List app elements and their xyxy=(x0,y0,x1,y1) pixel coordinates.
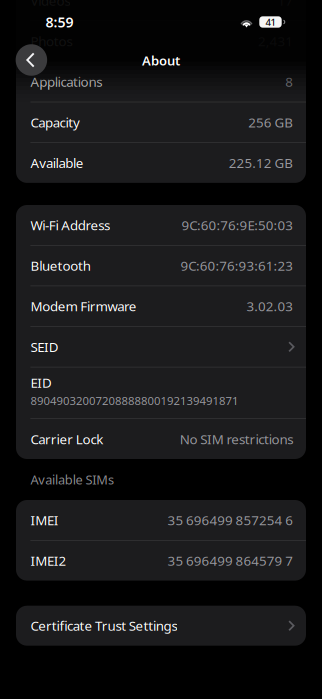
staticText: About xyxy=(142,52,180,69)
button[interactable]: IMEI xyxy=(16,500,306,540)
staticText: 225.12 GB xyxy=(229,154,293,172)
button[interactable]: Available xyxy=(16,143,306,183)
button[interactable]: Wi-Fi Address xyxy=(16,205,306,245)
button[interactable]: Certificate Trust Settings xyxy=(16,606,306,646)
staticText: 9C:60:76:9E:50:03 xyxy=(181,216,293,234)
staticText: Wi-Fi Address xyxy=(30,216,110,234)
staticText: No SIM restrictions xyxy=(180,430,293,448)
staticText: 8 xyxy=(285,73,293,91)
button[interactable]: Photos xyxy=(16,21,306,61)
staticText: SEID xyxy=(30,338,59,356)
staticText: EID xyxy=(30,374,52,392)
staticText: IMEI xyxy=(30,511,59,529)
staticText: Applications xyxy=(30,73,102,91)
button[interactable]: EID xyxy=(16,367,306,418)
staticText: 3.02.03 xyxy=(246,297,293,315)
button[interactable]: Modem Firmware xyxy=(16,286,306,326)
staticText: Available xyxy=(30,154,84,172)
staticText: Carrier Lock xyxy=(30,430,103,448)
button[interactable]: Back xyxy=(9,38,53,82)
staticText: Capacity xyxy=(30,113,80,131)
staticText: Modem Firmware xyxy=(30,297,137,315)
staticText: Bluetooth xyxy=(30,256,91,275)
button[interactable]: Capacity xyxy=(16,102,306,142)
staticText: 41 xyxy=(265,15,275,29)
staticText: Videos xyxy=(30,0,70,10)
button[interactable]: SEID xyxy=(16,327,306,367)
button[interactable]: Applications xyxy=(16,62,306,102)
button[interactable]: Bluetooth xyxy=(16,246,306,286)
staticText: IMEI2 xyxy=(30,551,67,570)
staticText: Certificate Trust Settings xyxy=(30,617,177,635)
staticText: 35 696499 864579 7 xyxy=(168,551,293,570)
button[interactable]: IMEI2 xyxy=(16,541,306,581)
staticText: 89049032007208888800192139491871 xyxy=(30,393,238,408)
staticText: 9C:60:76:93:61:23 xyxy=(180,256,293,275)
staticText: 8:59 xyxy=(45,12,73,32)
staticText: 35 696499 857254 6 xyxy=(168,511,293,529)
staticText: Available SIMs xyxy=(30,471,114,488)
button[interactable]: Videos xyxy=(16,0,306,20)
button[interactable]: Carrier Lock xyxy=(16,419,306,459)
staticText: Photos xyxy=(30,32,72,50)
staticText: 256 GB xyxy=(248,113,293,131)
